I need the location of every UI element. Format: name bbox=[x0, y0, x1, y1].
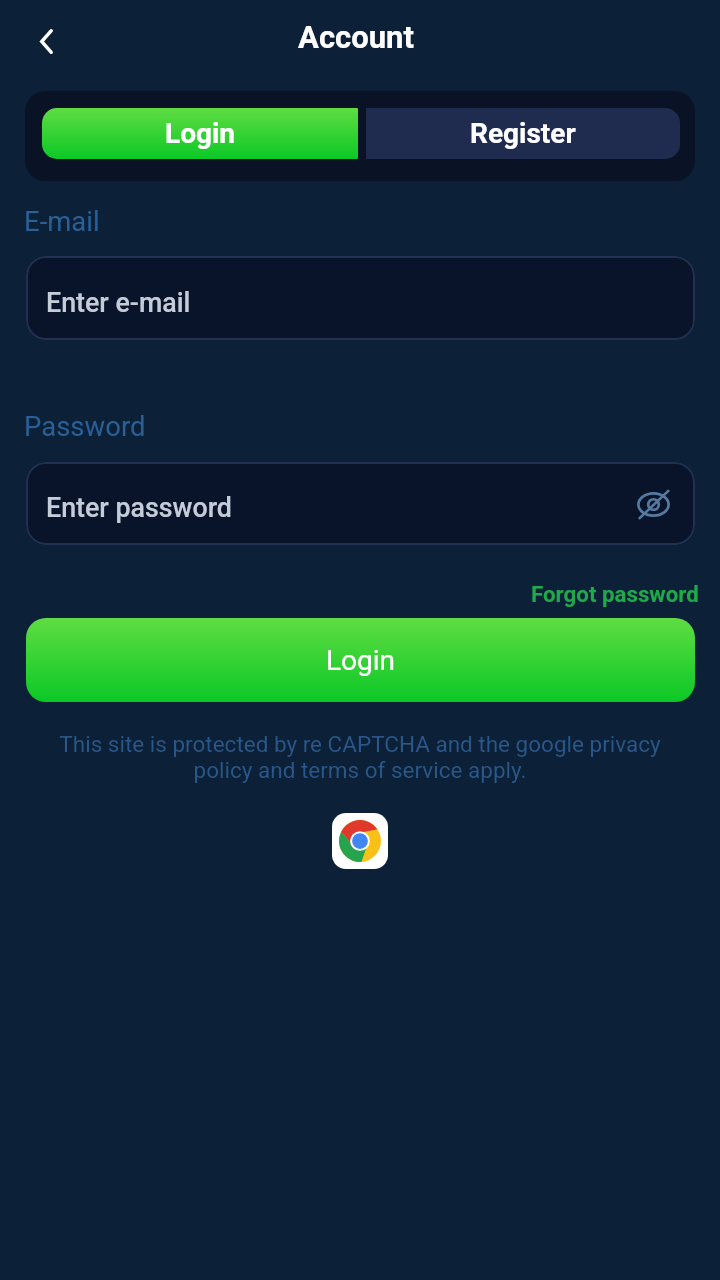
button[interactable]: Back bbox=[17, 12, 75, 70]
button[interactable]: Enter password bbox=[26, 462, 695, 545]
staticText: Account bbox=[0, 19, 716, 55]
button[interactable]: Login bbox=[42, 108, 358, 159]
button[interactable]: Chrome bbox=[332, 813, 388, 869]
staticText: This site is protected by re CAPTCHA and… bbox=[50, 731, 670, 784]
staticText: Register bbox=[470, 117, 576, 150]
staticText: Password bbox=[24, 410, 146, 442]
staticText: E-mail bbox=[24, 205, 100, 237]
staticText: Login bbox=[165, 117, 236, 150]
button[interactable]: Enter e-mail bbox=[26, 256, 695, 340]
staticText: Forgot password bbox=[531, 581, 699, 607]
staticText: Login bbox=[326, 644, 396, 677]
staticText: Enter e-mail bbox=[46, 287, 191, 318]
button[interactable]: Forgot password bbox=[527, 578, 703, 610]
button[interactable]: Register bbox=[366, 108, 680, 159]
button[interactable]: Login bbox=[26, 618, 695, 702]
button[interactable]: Show password bbox=[629, 480, 677, 528]
staticText: Enter password bbox=[46, 492, 232, 523]
